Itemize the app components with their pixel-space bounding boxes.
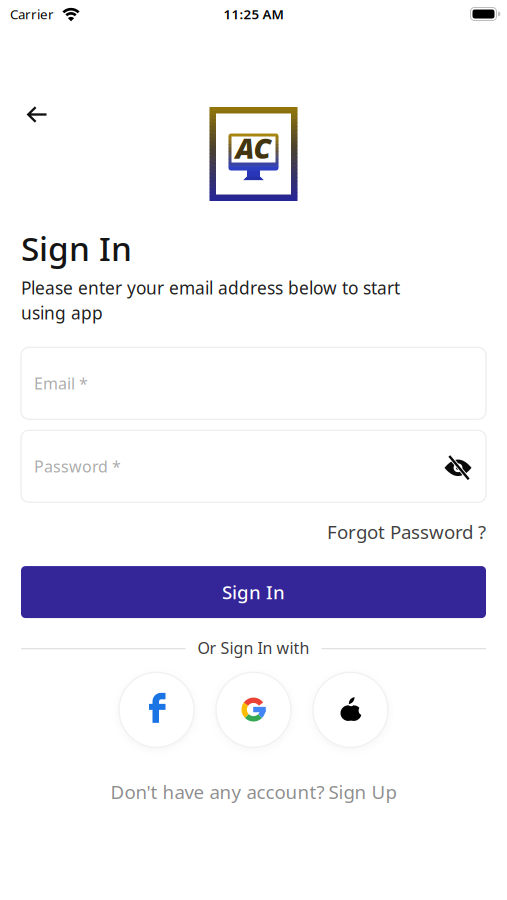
staticText: Or Sign In with — [197, 637, 309, 658]
button[interactable]: Sign in with Facebook — [119, 672, 194, 747]
staticText: 11:25 AM — [223, 5, 283, 23]
staticText: Don't have any account? — [110, 779, 324, 804]
staticText: AC — [235, 129, 271, 166]
staticText: Forgot Password ? — [327, 519, 486, 544]
button[interactable]: Show password — [444, 453, 472, 479]
staticText: Sign In — [21, 226, 132, 270]
staticText: Sign In — [222, 580, 285, 604]
button[interactable]: Back — [21, 100, 53, 129]
button[interactable]: Sign in with Apple — [313, 672, 388, 747]
staticText: Please enter your email address below to… — [21, 276, 400, 324]
staticText: Email * — [34, 373, 88, 394]
staticText: Password * — [34, 456, 121, 477]
button[interactable]: Forgot Password ? — [327, 519, 486, 544]
staticText: Sign Up — [328, 779, 396, 804]
staticText: Carrier — [10, 5, 54, 23]
button[interactable]: Sign Up — [328, 779, 396, 804]
button[interactable]: Sign In — [21, 566, 486, 618]
button[interactable]: Sign in with Google — [216, 672, 291, 747]
